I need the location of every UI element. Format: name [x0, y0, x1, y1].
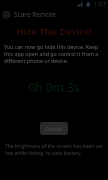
- button[interactable]: App icon: [2, 8, 108, 20]
- staticText: 0h 0m 3s: [0, 79, 108, 95]
- staticText: 1:57: [94, 0, 106, 8]
- staticText: Scare Remote: [14, 10, 56, 19]
- staticText: Cancel: [45, 125, 63, 132]
- button[interactable]: Cancel: [40, 122, 68, 135]
- staticText: Hide This Device!: [0, 25, 108, 37]
- other: App icon: [2, 10, 11, 19]
- staticText: You can now go hide this device. Keep th…: [4, 43, 104, 64]
- staticText: The brightness of the screen has been se…: [5, 143, 104, 157]
